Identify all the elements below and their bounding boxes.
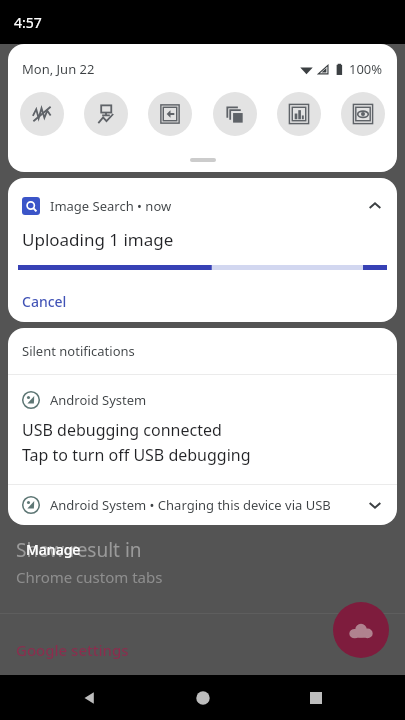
staticText: Tap to turn off USB debugging xyxy=(22,444,251,466)
button[interactable]: Android System xyxy=(8,375,397,484)
staticText: Cancel xyxy=(22,292,67,311)
button[interactable]: Android System • Charging this device vi… xyxy=(8,485,397,525)
button[interactable]: Manage xyxy=(20,537,87,562)
button[interactable]: Quick setting 3 xyxy=(213,92,257,136)
staticText: Android System • Charging this device vi… xyxy=(50,496,331,514)
staticText: Mon, Jun 22 xyxy=(22,60,95,78)
staticText: 4:57 xyxy=(14,13,42,32)
button[interactable]: Cancel xyxy=(16,288,73,315)
button[interactable]: Expand xyxy=(361,491,389,519)
button[interactable]: Image Search • now xyxy=(8,178,397,322)
button[interactable]: Home xyxy=(179,675,227,720)
staticText: Show result in xyxy=(16,537,142,563)
staticText: Image Search • now xyxy=(50,197,172,215)
staticText: Google settings xyxy=(16,640,129,660)
staticText: Safe search xyxy=(16,688,119,714)
staticText: Android System xyxy=(50,391,147,409)
button[interactable]: Quick setting 4 xyxy=(277,92,321,136)
staticText: Manage xyxy=(26,540,81,559)
button[interactable]: Quick setting 1 xyxy=(84,92,128,136)
button[interactable]: Back xyxy=(65,675,113,720)
staticText: 100% xyxy=(349,60,383,78)
button[interactable]: Quick setting 2 xyxy=(148,92,192,136)
button[interactable]: Collapse xyxy=(361,192,389,220)
staticText: USB debugging connected xyxy=(22,419,222,441)
button[interactable]: Upload xyxy=(333,602,389,658)
staticText: Chrome custom tabs xyxy=(16,567,163,587)
button[interactable]: Quick setting 5 xyxy=(341,92,385,136)
button[interactable]: Quick setting 0 xyxy=(20,92,64,136)
staticText: Uploading 1 image xyxy=(22,228,174,251)
button[interactable]: Recent apps xyxy=(292,675,340,720)
staticText: Silent notifications xyxy=(22,342,135,360)
button[interactable]: Silent notifications xyxy=(8,328,397,374)
